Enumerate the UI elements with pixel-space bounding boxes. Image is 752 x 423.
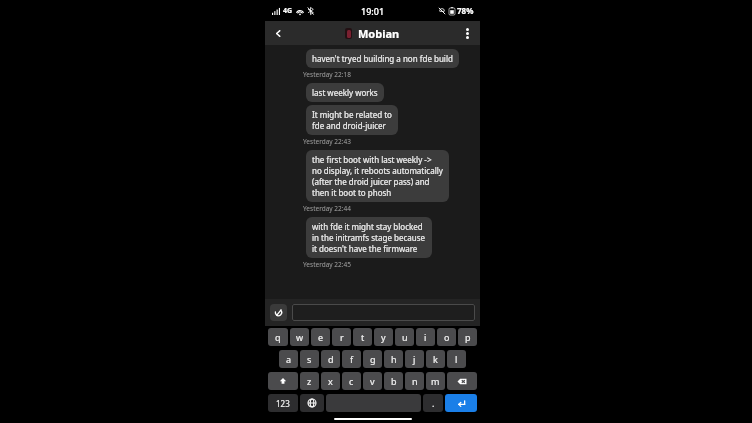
- staticText: z: [307, 375, 312, 387]
- button[interactable]: a: [279, 350, 298, 368]
- button[interactable]: s: [300, 350, 319, 368]
- button[interactable]: k: [426, 350, 445, 368]
- staticText: o: [444, 331, 450, 343]
- staticText: no display, it reboots automatically: [312, 165, 443, 176]
- button[interactable]: d: [321, 350, 340, 368]
- staticText: b: [391, 375, 397, 387]
- button[interactable]: haven't tryed building a non fde build: [306, 49, 459, 68]
- button[interactable]: the first boot with last weekly ->: [306, 150, 449, 202]
- button[interactable]: last weekly works: [306, 83, 384, 102]
- staticText: l: [455, 353, 458, 365]
- staticText: p: [465, 331, 471, 343]
- button[interactable]: Backspace: [447, 372, 477, 390]
- staticText: c: [349, 375, 354, 387]
- button[interactable]: with fde it might stay blocked: [306, 217, 432, 258]
- button[interactable]: Switch language: [300, 394, 324, 412]
- button[interactable]: z: [300, 372, 319, 390]
- button[interactable]: m: [426, 372, 445, 390]
- staticText: f: [350, 353, 354, 365]
- button[interactable]: Shift: [268, 372, 298, 390]
- staticText: 78%: [457, 5, 474, 16]
- button[interactable]: j: [405, 350, 424, 368]
- staticText: haven't tryed building a non fde build: [312, 53, 453, 64]
- staticText: t: [361, 331, 365, 343]
- staticText: with fde it might stay blocked: [312, 221, 423, 232]
- button[interactable]: .: [423, 394, 443, 412]
- staticText: r: [340, 331, 344, 343]
- button[interactable]: i: [416, 328, 435, 346]
- staticText: in the initramfs stage because: [312, 232, 426, 243]
- button[interactable]: c: [342, 372, 361, 390]
- button[interactable]: [292, 304, 475, 321]
- button[interactable]: It might be related to: [306, 105, 398, 135]
- staticText: Mobian: [358, 26, 400, 41]
- staticText: .: [432, 397, 435, 409]
- button[interactable]: Space: [326, 394, 421, 412]
- button[interactable]: Attach file: [270, 304, 287, 321]
- button[interactable]: p: [458, 328, 477, 346]
- button[interactable]: b: [384, 372, 403, 390]
- staticText: w: [296, 331, 304, 343]
- staticText: Yesterday 22:44: [303, 204, 351, 213]
- button[interactable]: e: [311, 328, 330, 346]
- button[interactable]: x: [321, 372, 340, 390]
- button[interactable]: n: [405, 372, 424, 390]
- button[interactable]: u: [395, 328, 414, 346]
- staticText: j: [413, 353, 416, 365]
- staticText: the first boot with last weekly ->: [312, 154, 432, 165]
- staticText: last weekly works: [312, 87, 378, 98]
- staticText: d: [328, 353, 334, 365]
- staticText: it doesn't have the firmware: [312, 243, 418, 254]
- button[interactable]: l: [447, 350, 466, 368]
- staticText: m: [431, 375, 440, 387]
- staticText: x: [328, 375, 333, 387]
- staticText: 4G: [283, 6, 293, 16]
- staticText: fde and droid-juicer: [312, 120, 386, 131]
- staticText: Yesterday 22:45: [303, 260, 351, 269]
- button[interactable]: t: [353, 328, 372, 346]
- staticText: e: [318, 331, 324, 343]
- button[interactable]: g: [363, 350, 382, 368]
- button[interactable]: f: [342, 350, 361, 368]
- staticText: 19:01: [361, 5, 385, 17]
- button[interactable]: Send: [445, 394, 477, 412]
- staticText: h: [391, 353, 397, 365]
- staticText: Yesterday 22:43: [303, 137, 351, 146]
- button[interactable]: h: [384, 350, 403, 368]
- staticText: a: [286, 353, 292, 365]
- staticText: q: [275, 331, 281, 343]
- button[interactable]: q: [268, 328, 288, 346]
- button[interactable]: Mobian: [345, 26, 400, 41]
- staticText: s: [307, 353, 312, 365]
- staticText: It might be related to: [312, 109, 392, 120]
- button[interactable]: r: [332, 328, 351, 346]
- staticText: Yesterday 22:18: [303, 70, 351, 79]
- staticText: n: [412, 375, 418, 387]
- button[interactable]: v: [363, 372, 382, 390]
- staticText: then it boot to phosh: [312, 187, 392, 198]
- staticText: y: [381, 331, 386, 343]
- staticText: i: [424, 331, 427, 343]
- button[interactable]: More options: [458, 24, 476, 42]
- button[interactable]: Back: [268, 23, 288, 43]
- staticText: (after the droid juicer pass) and: [312, 176, 430, 187]
- button[interactable]: w: [290, 328, 309, 346]
- button[interactable]: y: [374, 328, 393, 346]
- staticText: k: [433, 353, 438, 365]
- button[interactable]: 123: [268, 394, 298, 412]
- staticText: g: [370, 353, 376, 365]
- button[interactable]: o: [437, 328, 456, 346]
- staticText: u: [402, 331, 408, 343]
- staticText: 123: [276, 398, 290, 409]
- staticText: v: [370, 375, 375, 387]
